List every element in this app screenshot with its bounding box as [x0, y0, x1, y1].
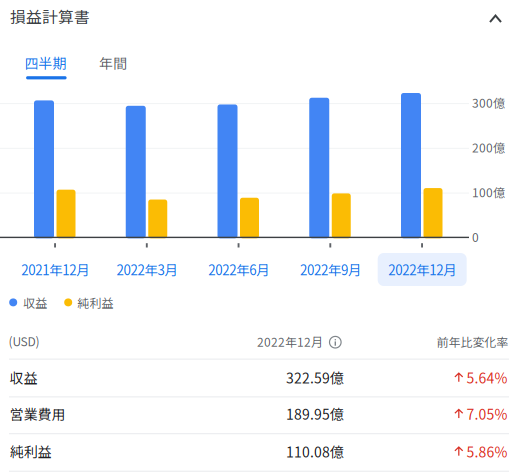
button[interactable]: 2022年6月 [205, 253, 272, 286]
staticText: 189.95億 [286, 404, 344, 424]
staticText: 前年比変化率 [436, 333, 508, 350]
button[interactable]: 2022年3月 [113, 253, 180, 286]
button[interactable]: セクションを折りたたむ [478, 4, 512, 34]
staticText: 200億 [472, 139, 505, 156]
staticText: 110.08億 [286, 441, 344, 461]
button[interactable]: 詳細情報 [325, 332, 345, 352]
staticText: 収益 [23, 294, 47, 311]
staticText: 2022年12月 [388, 260, 456, 279]
staticText: 純利益 [77, 294, 113, 311]
staticText: 四半期 [24, 53, 66, 73]
staticText: 300億 [472, 94, 505, 111]
button[interactable]: 四半期 [24, 53, 66, 79]
staticText: 7.05% [466, 404, 507, 424]
staticText: 営業費用 [10, 404, 66, 424]
staticText: 損益計算書 [10, 5, 90, 27]
staticText: 322.59億 [286, 367, 344, 388]
button[interactable]: 2022年12月 [378, 253, 467, 286]
staticText: 年間 [99, 53, 127, 73]
staticText: 2022年12月 [257, 333, 323, 350]
staticText: 5.64% [466, 367, 507, 388]
staticText: 純利益 [10, 441, 52, 461]
staticText: 2022年9月 [300, 260, 361, 279]
staticText: 2021年12月 [21, 260, 89, 279]
staticText: 0 [472, 228, 479, 245]
button[interactable]: 2021年12月 [18, 253, 92, 286]
button[interactable]: 2022年9月 [297, 253, 364, 286]
staticText: 5.86% [466, 441, 507, 461]
staticText: (USD) [9, 332, 40, 350]
staticText: 2022年6月 [208, 260, 269, 279]
staticText: 収益 [10, 367, 38, 387]
button[interactable]: 年間 [99, 53, 127, 79]
staticText: 100億 [472, 183, 505, 201]
staticText: 2022年3月 [116, 260, 177, 279]
